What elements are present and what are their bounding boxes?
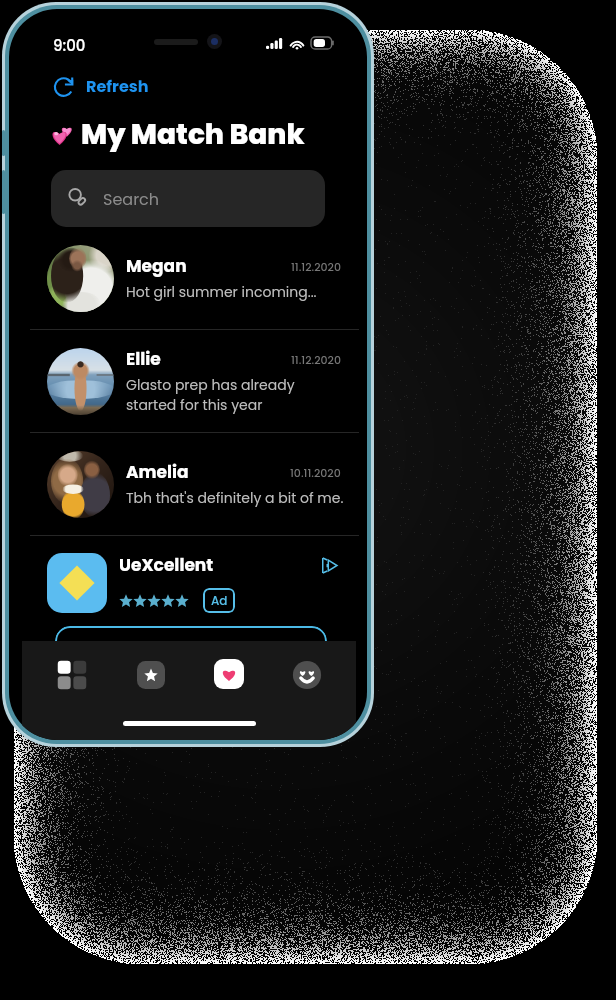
button[interactable]: Amelia [9, 433, 367, 535]
staticText: UeXcellent [119, 553, 214, 577]
staticText: started for this year [126, 395, 263, 415]
button[interactable]: Favourites [127, 651, 175, 699]
staticText: Amelia [126, 460, 189, 484]
staticText: Tbh that's definitely a bit of me. [126, 488, 344, 508]
staticText: 11.12.2020 [291, 259, 341, 274]
staticText: Ad [211, 592, 228, 609]
button[interactable]: Search [51, 170, 325, 227]
staticText: Glasto prep has already [126, 375, 295, 395]
staticText: 10.11.2020 [290, 465, 341, 480]
staticText: Search [103, 188, 160, 210]
staticText: My Match Bank [81, 115, 305, 154]
button[interactable]: Browse [48, 651, 96, 699]
staticText: Ellie [126, 347, 161, 371]
button[interactable]: Ad [203, 588, 235, 613]
button[interactable] [55, 626, 327, 674]
button[interactable]: Refresh [51, 71, 155, 101]
button[interactable]: Matches [205, 650, 253, 698]
staticText: Megan [126, 254, 187, 278]
staticText: Hot girl summer incoming... [126, 282, 317, 302]
button[interactable]: Profile [283, 651, 331, 699]
button[interactable]: UeXcellent [9, 536, 367, 613]
button[interactable]: Ellie [9, 330, 367, 432]
staticText: Refresh [86, 75, 149, 97]
staticText: 11.12.2020 [291, 352, 341, 367]
button[interactable]: Ad choices [317, 553, 341, 577]
staticText: 9:00 [53, 35, 86, 56]
button[interactable]: Megan [9, 227, 367, 329]
